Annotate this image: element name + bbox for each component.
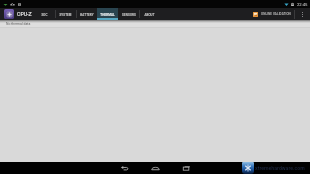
button[interactable]: THERMAL — [97, 8, 118, 20]
staticText: THERMAL — [100, 13, 115, 16]
button[interactable]: SENSORS — [118, 8, 139, 20]
button[interactable]: SOC — [34, 8, 55, 20]
staticText: ABOUT — [144, 13, 155, 16]
staticText: SYSTEM — [59, 13, 72, 16]
staticText: SENSORS — [122, 13, 136, 16]
button[interactable]: Back — [120, 162, 129, 174]
staticText: No thermal data — [6, 22, 31, 26]
staticText: CPU-Z — [17, 11, 32, 17]
staticText: 22:45 — [297, 2, 308, 7]
button[interactable]: SYSTEM — [55, 8, 76, 20]
staticText: SOC — [41, 13, 48, 16]
button[interactable]: BATTERY — [76, 8, 97, 20]
staticText: ONLINE VALIDATION — [261, 12, 291, 16]
button[interactable]: ONLINE VALIDATION — [249, 8, 294, 20]
button[interactable]: More options — [295, 8, 310, 20]
button[interactable]: ABOUT — [139, 8, 160, 20]
button[interactable]: Recents — [182, 162, 191, 174]
button[interactable]: Home — [151, 162, 160, 174]
staticText: xtremehardware.com — [255, 165, 305, 171]
staticText: BATTERY — [80, 13, 94, 16]
